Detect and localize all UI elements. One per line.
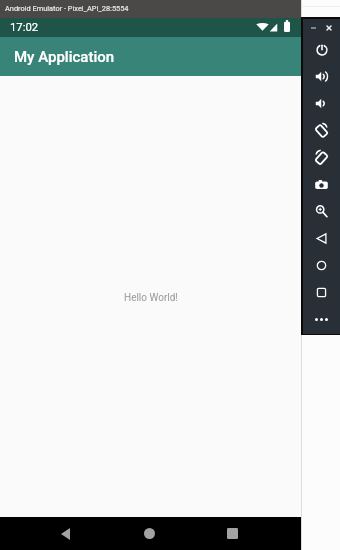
button[interactable]: Minimize	[306, 21, 320, 35]
button[interactable]: Back	[303, 225, 340, 252]
button[interactable]: Overview	[189, 517, 275, 550]
staticText: My Application	[14, 48, 115, 66]
staticText: Hello World!	[124, 292, 178, 304]
button[interactable]: Home	[303, 252, 340, 279]
button[interactable]: Power	[303, 36, 340, 63]
button[interactable]: More	[303, 306, 340, 333]
button[interactable]: Close	[322, 21, 336, 35]
staticText: 17:02	[10, 21, 39, 34]
staticText: Android Emulator - Pixel_API_28:5554	[5, 4, 129, 13]
button[interactable]: Overview	[303, 279, 340, 306]
button[interactable]: Rotate right	[303, 144, 340, 171]
button[interactable]: Rotate left	[303, 117, 340, 144]
button[interactable]: Take screenshot	[303, 171, 340, 198]
button[interactable]: Zoom	[303, 198, 340, 225]
button[interactable]: Home	[106, 517, 192, 550]
button[interactable]: Back	[22, 517, 108, 550]
button[interactable]: Volume up	[303, 63, 340, 90]
button[interactable]: Volume down	[303, 90, 340, 117]
